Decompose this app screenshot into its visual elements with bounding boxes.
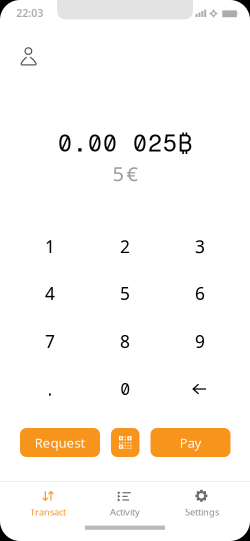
staticText: 4 bbox=[45, 282, 55, 305]
button[interactable]: 6 bbox=[169, 273, 231, 313]
staticText: 5 € bbox=[112, 160, 137, 187]
button[interactable]: Settings bbox=[164, 481, 240, 525]
button[interactable]: 3 bbox=[169, 226, 231, 266]
button[interactable]: Activity bbox=[87, 481, 163, 525]
staticText: Settings bbox=[185, 506, 219, 518]
button[interactable]: 9 bbox=[169, 321, 231, 361]
staticText: 9 bbox=[195, 330, 205, 353]
button[interactable]: 0 bbox=[94, 369, 156, 409]
staticText: 0.00 025₿ bbox=[57, 129, 192, 157]
staticText: 1 bbox=[45, 235, 55, 258]
button[interactable]: 1 bbox=[19, 226, 81, 266]
button[interactable]: Profile bbox=[17, 43, 39, 67]
staticText: Request bbox=[34, 434, 85, 451]
button[interactable]: 4 bbox=[19, 273, 81, 313]
button[interactable]: Delete bbox=[168, 369, 230, 409]
staticText: . bbox=[47, 377, 52, 400]
button[interactable]: 5 bbox=[94, 273, 156, 313]
button[interactable]: 8 bbox=[94, 321, 156, 361]
staticText: Pay bbox=[179, 434, 201, 451]
button[interactable]: Scan QR code bbox=[111, 428, 139, 457]
button[interactable]: 7 bbox=[19, 321, 81, 361]
staticText: 7 bbox=[45, 330, 55, 353]
staticText: 8 bbox=[120, 330, 130, 353]
staticText: 6 bbox=[195, 282, 205, 305]
button[interactable]: Request bbox=[20, 428, 100, 457]
button[interactable]: Pay bbox=[150, 428, 230, 457]
button[interactable]: Decimal point bbox=[19, 369, 81, 409]
button[interactable]: 2 bbox=[94, 226, 156, 266]
staticText: Activity bbox=[110, 506, 140, 518]
staticText: 2 bbox=[120, 235, 130, 258]
staticText: 22:03 bbox=[16, 6, 43, 20]
staticText: 3 bbox=[195, 235, 205, 258]
staticText: 0 bbox=[120, 379, 130, 399]
staticText: Transact bbox=[30, 506, 66, 518]
staticText: 5 bbox=[120, 282, 130, 305]
button[interactable]: Transact bbox=[10, 481, 86, 525]
